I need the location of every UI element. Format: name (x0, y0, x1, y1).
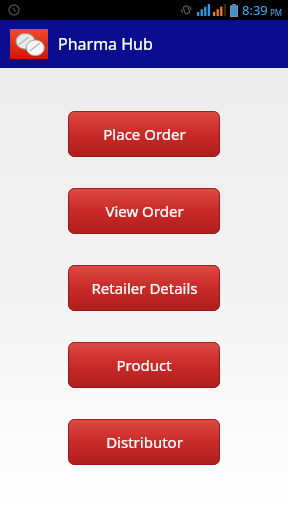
staticText: Distributor (106, 432, 183, 452)
button[interactable]: Place Order (68, 111, 220, 157)
staticText: View Order (105, 201, 184, 221)
staticText: Product (116, 355, 172, 375)
button[interactable]: Product (68, 342, 220, 388)
staticText: Pharma Hub (58, 33, 153, 55)
staticText: 8:39 (242, 1, 268, 19)
staticText: Retailer Details (91, 278, 198, 298)
button[interactable]: Distributor (68, 419, 220, 465)
button[interactable]: View Order (68, 188, 220, 234)
button[interactable]: Retailer Details (68, 265, 220, 311)
staticText: PM (270, 7, 283, 18)
staticText: Place Order (103, 124, 186, 144)
